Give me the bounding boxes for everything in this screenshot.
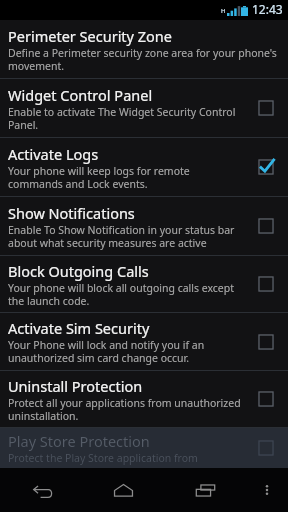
staticText: Widget Control Panel [8, 85, 153, 105]
button[interactable]: Uninstall Protection [0, 371, 288, 427]
button[interactable]: Disabled [249, 91, 283, 125]
button[interactable]: Perimeter Security Zone [0, 20, 288, 78]
staticText: Block Outgoing Calls [8, 261, 149, 281]
staticText: Activate Sim Security [8, 318, 150, 338]
button[interactable]: Disabled [249, 431, 283, 465]
staticText: 12:43 [252, 1, 283, 17]
button[interactable]: Disabled [249, 382, 283, 416]
staticText: Your phone will keep logs for remote com… [8, 164, 243, 191]
staticText: Protect the Play Store application from [8, 451, 198, 465]
staticText: Protect all your applications from unaut… [8, 396, 243, 423]
staticText: Define a Perimeter security zone area fo… [8, 46, 283, 73]
button[interactable]: Disabled [249, 267, 283, 301]
button[interactable]: Back [0, 468, 82, 512]
staticText: Play Store Protection [8, 431, 150, 451]
staticText: Uninstall Protection [8, 376, 143, 396]
button[interactable]: Home [82, 468, 164, 512]
button[interactable]: Enabled [249, 150, 283, 184]
staticText: Your phone will block all outgoing calls… [8, 281, 243, 308]
button[interactable]: Disabled [249, 325, 283, 359]
button[interactable]: Activate Sim Security [0, 313, 288, 370]
button[interactable]: More options [246, 468, 288, 512]
staticText: Perimeter Security Zone [8, 26, 172, 46]
button[interactable]: Disabled [249, 209, 283, 243]
staticText: Enable To Show Notification in your stat… [8, 223, 243, 250]
button[interactable]: Block Outgoing Calls [0, 256, 288, 312]
staticText: Your Phone will lock and notify you if a… [8, 338, 243, 365]
staticText: Show Notifications [8, 203, 135, 223]
staticText: Activate Logs [8, 144, 99, 164]
button[interactable]: Widget Control Panel [0, 79, 288, 137]
staticText: H [221, 7, 226, 15]
button[interactable]: Play Store Protection [0, 428, 288, 468]
button[interactable]: Show Notifications [0, 197, 288, 255]
staticText: Enable to activate The Widget Security C… [8, 105, 243, 132]
button[interactable]: Activate Logs [0, 138, 288, 196]
button[interactable]: Recent apps [164, 468, 246, 512]
